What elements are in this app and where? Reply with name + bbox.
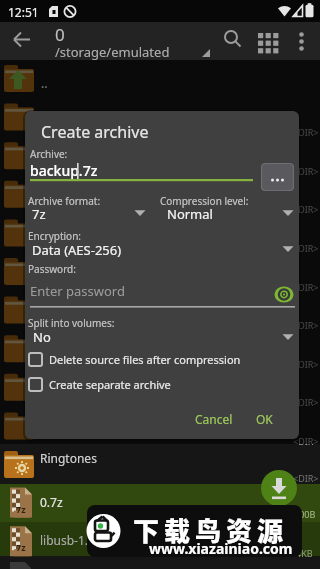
button[interactable]	[87, 505, 302, 557]
button[interactable]	[8, 26, 38, 56]
staticText: 300B	[294, 508, 316, 520]
staticText: Create archive	[41, 121, 149, 143]
staticText: Enter password	[30, 282, 125, 300]
button[interactable]	[0, 522, 320, 556]
staticText: <DIR>	[293, 242, 319, 254]
button[interactable]	[28, 325, 294, 345]
button[interactable]: Cancel	[188, 404, 238, 430]
staticText: <DIR>	[293, 281, 319, 293]
staticText: libusb-1.0.so	[40, 532, 112, 548]
staticText: OK	[256, 411, 273, 427]
staticText: 7z	[32, 205, 46, 223]
staticText: <DIR>	[293, 165, 319, 177]
staticText: 7z	[16, 503, 26, 515]
staticText: Delete source files after compression	[49, 352, 241, 367]
button[interactable]	[26, 373, 276, 396]
staticText: Password:	[28, 262, 76, 276]
staticText: Create separate archive	[49, 377, 171, 392]
staticText: 0.7z	[40, 494, 63, 510]
staticText: 0	[55, 23, 65, 46]
staticText: No	[33, 328, 51, 346]
staticText: <DIR>	[293, 472, 319, 484]
staticText: <DIR>	[293, 126, 319, 138]
staticText: 7z	[16, 541, 26, 553]
button[interactable]	[0, 484, 320, 522]
button[interactable]	[290, 26, 314, 54]
button[interactable]	[0, 446, 320, 484]
staticText: Data (AES-256)	[32, 241, 122, 259]
button[interactable]	[28, 203, 148, 223]
button[interactable]	[261, 163, 294, 191]
staticText: Normal	[167, 205, 213, 223]
button[interactable]	[261, 470, 297, 506]
staticText: 12:51	[8, 4, 39, 20]
button[interactable]	[26, 348, 276, 371]
staticText: <DIR>	[293, 203, 319, 215]
button[interactable]	[30, 276, 270, 308]
staticText: Cancel	[195, 411, 233, 427]
staticText: 4KB	[296, 547, 313, 559]
button[interactable]	[0, 60, 320, 98]
staticText: <DIR>	[293, 435, 319, 447]
button[interactable]	[220, 26, 244, 54]
button[interactable]	[254, 26, 286, 54]
staticText: Compression level:	[160, 194, 249, 208]
staticText: Encryption:	[28, 229, 82, 243]
staticText: www.xiazainiao.com	[149, 539, 293, 558]
staticText: 下载鸟资源	[133, 511, 289, 549]
staticText: <DIR>	[293, 396, 319, 408]
staticText: <DIR>	[293, 358, 319, 370]
button[interactable]	[272, 282, 297, 307]
staticText: backup.7z	[30, 161, 98, 180]
button[interactable]	[160, 203, 294, 223]
button[interactable]: OK	[248, 404, 286, 430]
staticText: Archive format:	[28, 194, 101, 208]
button[interactable]	[28, 238, 294, 258]
button[interactable]	[30, 156, 255, 182]
staticText: ..	[41, 75, 48, 91]
staticText: /storage/emulated	[55, 43, 170, 61]
staticText: Split into volumes:	[28, 316, 115, 330]
staticText: Archive:	[30, 147, 68, 161]
staticText: Ringtones	[40, 450, 97, 466]
staticText: <DIR>	[293, 319, 319, 331]
